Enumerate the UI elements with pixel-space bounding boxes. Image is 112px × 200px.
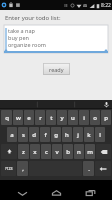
staticText: ?123: [5, 166, 13, 171]
staticText: j: [77, 131, 79, 139]
button[interactable]: .: [83, 161, 94, 176]
button[interactable]: p: [101, 110, 111, 125]
staticText: buy pen: [8, 34, 29, 41]
button[interactable]: Voice input: [103, 101, 110, 108]
button[interactable]: Backspace: [96, 144, 111, 159]
button[interactable]: q: [1, 110, 12, 125]
staticText: x: [33, 148, 37, 156]
button[interactable]: Shift: [1, 144, 17, 159]
staticText: take a nap: [8, 27, 35, 34]
staticText: r: [39, 114, 42, 122]
staticText: 4G: [83, 4, 87, 8]
staticText: p: [104, 114, 108, 122]
button[interactable]: Back: [10, 185, 34, 200]
button[interactable]: n: [74, 144, 84, 159]
staticText: u: [71, 114, 75, 122]
staticText: e: [27, 114, 31, 122]
staticText: l: [99, 131, 101, 139]
staticText: y: [60, 114, 64, 122]
button[interactable]: v: [52, 144, 62, 159]
staticText: h: [65, 131, 69, 139]
staticText: z: [22, 148, 25, 156]
staticText: n: [77, 148, 81, 156]
staticText: .: [88, 165, 90, 173]
staticText: v: [55, 148, 59, 156]
staticText: m: [87, 148, 93, 156]
button[interactable]: w: [13, 110, 23, 125]
button[interactable]: a: [7, 127, 17, 142]
button[interactable]: x: [30, 144, 40, 159]
staticText: ready: [49, 66, 64, 73]
button[interactable]: r: [35, 110, 45, 125]
button[interactable]: e: [24, 110, 34, 125]
staticText: c: [45, 148, 48, 156]
button[interactable]: Symbols: [1, 161, 16, 176]
staticText: 8:22: [101, 2, 111, 9]
staticText: d: [32, 131, 36, 139]
staticText: f: [44, 131, 47, 139]
staticText: b: [66, 148, 70, 156]
staticText: q: [5, 114, 9, 122]
staticText: ,: [22, 165, 24, 173]
staticText: i: [83, 114, 85, 122]
button[interactable]: s: [18, 127, 28, 142]
button[interactable]: k: [84, 127, 94, 142]
button[interactable]: b: [63, 144, 73, 159]
button[interactable]: m: [85, 144, 95, 159]
button[interactable]: Recent apps: [78, 185, 102, 200]
button[interactable]: c: [41, 144, 51, 159]
button[interactable]: ,: [17, 161, 28, 176]
staticText: t: [50, 114, 53, 122]
button[interactable]: h: [62, 127, 72, 142]
staticText: Enter your todo list:: [5, 14, 61, 22]
button[interactable]: t: [46, 110, 56, 125]
button[interactable]: j: [73, 127, 83, 142]
staticText: a: [10, 131, 14, 139]
button[interactable]: g: [51, 127, 61, 142]
button[interactable]: z: [18, 144, 29, 159]
button[interactable]: take a nap: [4, 25, 108, 53]
button[interactable]: d: [29, 127, 39, 142]
staticText: o: [93, 114, 97, 122]
staticText: s: [22, 131, 25, 139]
button[interactable]: i: [79, 110, 89, 125]
button[interactable]: ready: [43, 63, 70, 75]
staticText: g: [54, 131, 58, 139]
button[interactable]: u: [68, 110, 78, 125]
button[interactable]: Enter: [95, 161, 111, 176]
button[interactable]: Home: [44, 185, 68, 200]
button[interactable]: f: [40, 127, 50, 142]
button[interactable]: o: [90, 110, 100, 125]
button[interactable]: l: [95, 127, 105, 142]
staticText: w: [16, 114, 21, 122]
button[interactable]: y: [57, 110, 67, 125]
staticText: organize room: [8, 41, 46, 48]
staticText: k: [87, 131, 91, 139]
